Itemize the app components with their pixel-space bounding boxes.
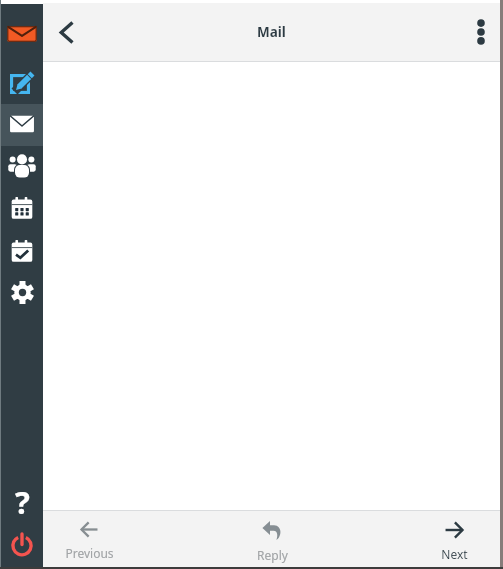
button[interactable]: Inbox [1, 104, 43, 146]
button[interactable]: Calendar [1, 188, 43, 230]
button[interactable]: Settings [1, 272, 43, 314]
button[interactable]: Mail [1, 4, 43, 62]
button[interactable]: Previous [43, 511, 135, 567]
button[interactable]: Compose [1, 62, 43, 104]
staticText: Next [441, 546, 468, 562]
staticText: Mail [257, 23, 286, 41]
staticText: Previous [65, 545, 114, 561]
button[interactable]: Reply [226, 511, 318, 567]
button[interactable]: Help [1, 481, 43, 523]
button[interactable]: Next [408, 511, 500, 567]
button[interactable]: More options [462, 3, 500, 61]
button[interactable]: Sign out [1, 523, 43, 565]
button[interactable]: Back [43, 3, 89, 61]
button[interactable]: Tasks [1, 230, 43, 272]
staticText: Reply [257, 547, 288, 563]
staticText: ? [15, 481, 30, 523]
button[interactable]: Contacts [1, 146, 43, 188]
